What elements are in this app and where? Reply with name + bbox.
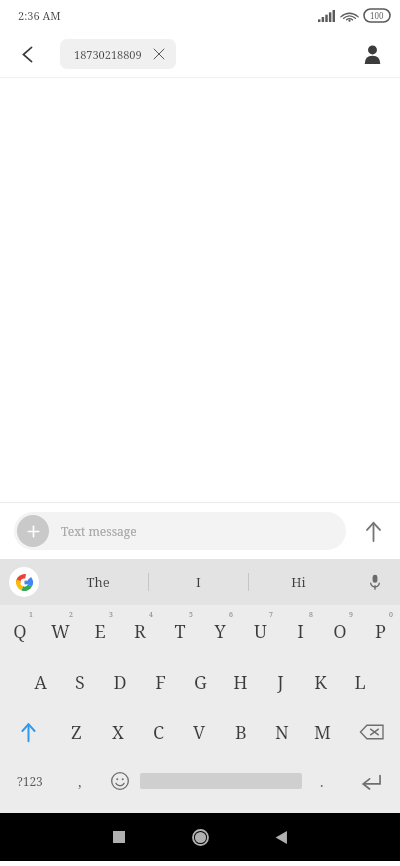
button[interactable]: Backspace xyxy=(343,707,400,757)
staticText: I xyxy=(196,573,201,591)
staticText: L xyxy=(354,670,366,695)
button[interactable]: S xyxy=(60,657,100,707)
button[interactable]: Space xyxy=(140,757,302,805)
button[interactable]: Contact details xyxy=(352,34,392,74)
button[interactable]: H xyxy=(220,657,260,707)
button[interactable]: . xyxy=(302,757,342,805)
staticText: D xyxy=(113,670,127,695)
staticText: 1 xyxy=(29,610,33,620)
button[interactable]: W xyxy=(40,605,80,657)
staticText: . xyxy=(320,772,324,791)
staticText: B xyxy=(235,720,247,745)
button[interactable]: Add attachment xyxy=(17,515,49,547)
button[interactable]: C xyxy=(138,707,179,757)
staticText: X xyxy=(112,720,124,745)
staticText: 3 xyxy=(109,610,113,620)
staticText: J xyxy=(277,670,284,695)
button[interactable]: T xyxy=(160,605,200,657)
staticText: W xyxy=(51,619,70,644)
staticText: The xyxy=(86,573,110,591)
staticText: 0 xyxy=(389,610,393,620)
button[interactable]: K xyxy=(300,657,340,707)
staticText: Y xyxy=(214,619,226,644)
staticText: A xyxy=(34,670,47,695)
staticText: 8 xyxy=(309,610,313,620)
button[interactable]: Enter xyxy=(342,757,400,805)
button[interactable]: N xyxy=(261,707,302,757)
button[interactable]: Add attachment xyxy=(14,512,346,550)
staticText: 7 xyxy=(269,610,273,620)
button[interactable]: Shift xyxy=(0,707,56,757)
button[interactable]: Google search xyxy=(9,567,39,597)
staticText: Z xyxy=(71,720,82,745)
staticText: 4 xyxy=(149,610,153,620)
button[interactable]: M xyxy=(302,707,343,757)
staticText: Hi xyxy=(291,573,306,591)
staticText: Q xyxy=(13,619,27,644)
button[interactable]: Q xyxy=(0,605,40,657)
button[interactable]: Back xyxy=(8,34,48,74)
button[interactable]: Remove recipient xyxy=(151,46,167,62)
staticText: P xyxy=(375,619,386,644)
button[interactable]: Y xyxy=(200,605,240,657)
staticText: 6 xyxy=(229,610,233,620)
button[interactable]: X xyxy=(97,707,138,757)
staticText: R xyxy=(134,619,146,644)
button[interactable]: 18730218809 xyxy=(60,39,176,69)
button[interactable]: A xyxy=(20,657,60,707)
button[interactable]: V xyxy=(179,707,220,757)
button[interactable]: E xyxy=(80,605,120,657)
button[interactable]: ?123 xyxy=(0,757,59,805)
staticText: 2:36 AM xyxy=(18,8,61,23)
button[interactable]: Z xyxy=(56,707,97,757)
staticText: F xyxy=(155,670,166,695)
button[interactable]: , xyxy=(59,757,100,805)
staticText: G xyxy=(194,670,207,695)
button[interactable]: L xyxy=(340,657,380,707)
staticText: 9 xyxy=(349,610,353,620)
staticText: , xyxy=(78,772,82,791)
button[interactable]: I xyxy=(280,605,320,657)
button[interactable]: Hi xyxy=(249,559,348,605)
button[interactable]: Home xyxy=(155,813,245,861)
button[interactable]: F xyxy=(140,657,180,707)
button[interactable]: B xyxy=(220,707,261,757)
staticText: 5 xyxy=(189,610,193,620)
button[interactable]: P xyxy=(360,605,400,657)
staticText: M xyxy=(314,720,331,745)
staticText: Text message xyxy=(61,523,137,539)
staticText: S xyxy=(75,670,85,695)
staticText: N xyxy=(275,720,289,745)
staticText: K xyxy=(314,670,327,695)
staticText: I xyxy=(297,619,304,644)
button[interactable]: I xyxy=(149,559,248,605)
staticText: E xyxy=(94,619,106,644)
button[interactable]: U xyxy=(240,605,280,657)
staticText: C xyxy=(153,720,165,745)
button[interactable]: Emoji xyxy=(100,757,140,805)
staticText: U xyxy=(254,619,267,644)
button[interactable]: Send xyxy=(346,504,400,558)
staticText: O xyxy=(333,619,347,644)
staticText: ?123 xyxy=(17,773,43,789)
staticText: 18730218809 xyxy=(74,47,142,62)
staticText: V xyxy=(193,720,206,745)
staticText: 100 xyxy=(370,10,384,21)
button[interactable]: Voice input xyxy=(358,565,392,599)
staticText: 2 xyxy=(69,610,73,620)
button[interactable]: G xyxy=(180,657,220,707)
button[interactable]: O xyxy=(320,605,360,657)
staticText: H xyxy=(233,670,248,695)
button[interactable]: D xyxy=(100,657,140,707)
button[interactable]: The xyxy=(48,559,148,605)
button[interactable]: Back xyxy=(245,813,317,861)
button[interactable]: J xyxy=(260,657,300,707)
button[interactable]: R xyxy=(120,605,160,657)
button[interactable]: Recent apps xyxy=(83,813,155,861)
staticText: T xyxy=(174,619,186,644)
